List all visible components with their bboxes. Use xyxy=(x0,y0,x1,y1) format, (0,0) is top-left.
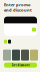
staticText: Get discount xyxy=(11,63,29,67)
staticText: Enter promo xyxy=(4,2,31,7)
staticText: and discount xyxy=(4,7,32,13)
